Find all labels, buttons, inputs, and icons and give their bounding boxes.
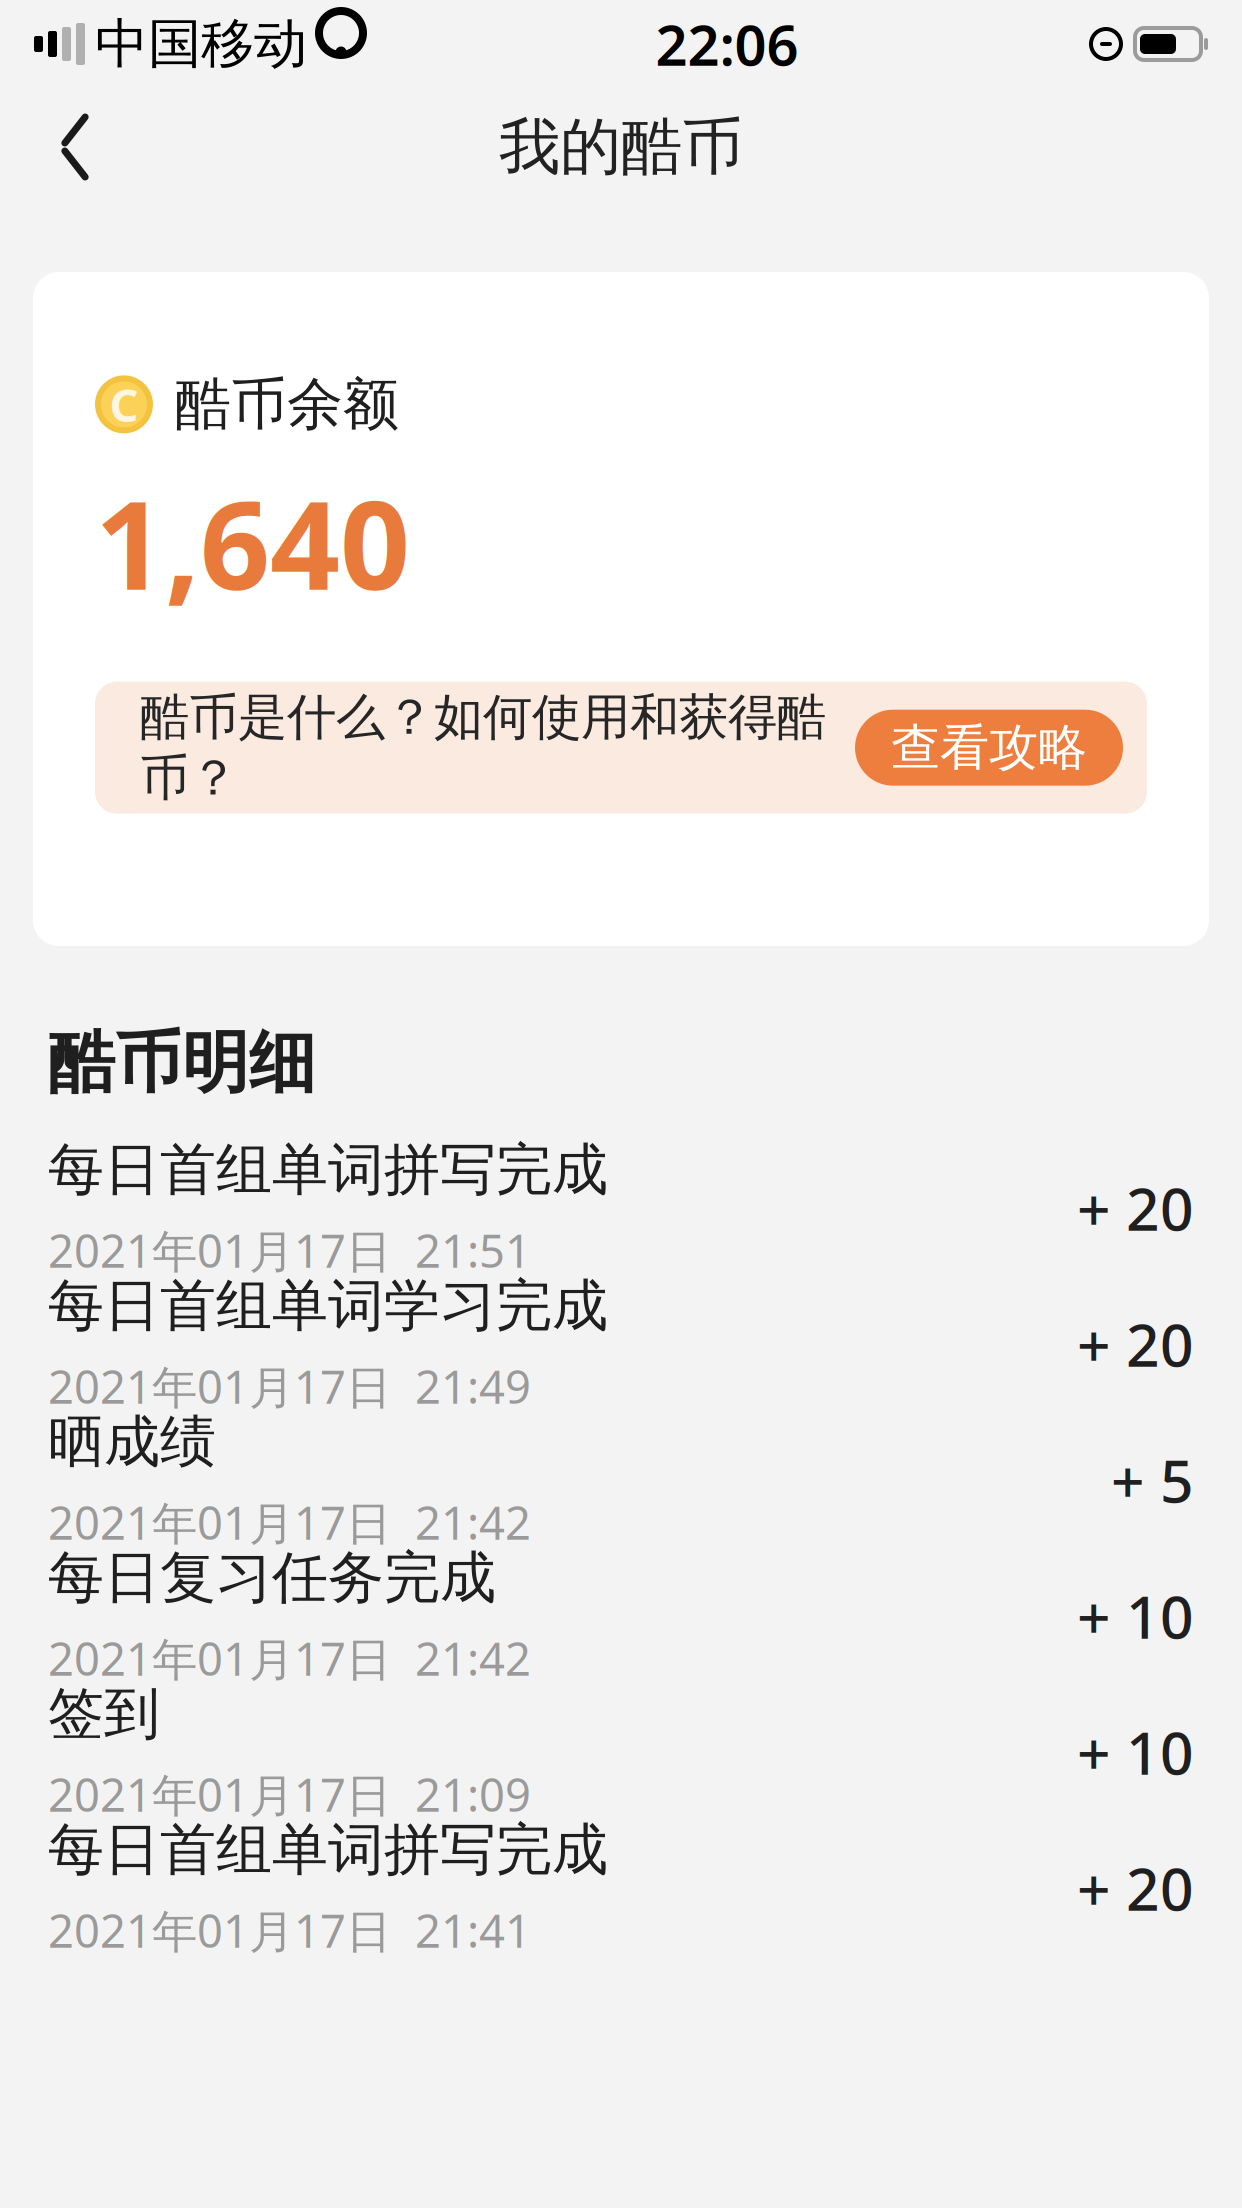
staticText: 我的酷币 [499, 109, 743, 185]
button[interactable]: 每日首组单词拼写完成 [0, 1140, 1242, 1276]
staticText: + 20 [1077, 1169, 1194, 1247]
staticText: 每日首组单词学习完成 [48, 1271, 608, 1340]
button[interactable]: 每日首组单词拼写完成 [0, 1820, 1242, 1956]
staticText: 2021年01月17日 21:49 [48, 1356, 531, 1416]
staticText: 签到 [48, 1679, 160, 1748]
staticText: 查看攻略 [891, 717, 1087, 778]
button[interactable]: 返回 [20, 92, 130, 202]
button[interactable]: 查看攻略 [855, 710, 1123, 786]
staticText: 每日首组单词拼写完成 [48, 1135, 608, 1204]
staticText: 1,640 [95, 461, 410, 624]
button[interactable]: 签到 [0, 1684, 1242, 1820]
staticText: 酷币明细 [48, 1022, 316, 1104]
staticText: 2021年01月17日 21:42 [48, 1628, 531, 1688]
staticText: 2021年01月17日 21:09 [48, 1764, 531, 1824]
staticText: + 5 [1111, 1441, 1194, 1519]
staticText: + 20 [1077, 1305, 1194, 1383]
button[interactable]: 每日复习任务完成 [0, 1548, 1242, 1684]
staticText: 2021年01月17日 21:42 [48, 1492, 531, 1552]
staticText: 每日复习任务完成 [48, 1543, 496, 1612]
staticText: 2021年01月17日 21:51 [48, 1220, 531, 1280]
staticText: 酷币是什么？如何使用和获得酷币？ [140, 687, 826, 808]
staticText: 中国移动 [95, 11, 307, 77]
staticText: 晒成绩 [48, 1407, 216, 1476]
staticText: 2021年01月17日 21:41 [48, 1900, 531, 1960]
staticText: + 10 [1077, 1713, 1194, 1791]
staticText: 酷币余额 [175, 370, 399, 439]
staticText: 22:06 [655, 7, 798, 81]
staticText: C [109, 374, 138, 434]
staticText: 每日首组单词拼写完成 [48, 1815, 608, 1884]
staticText: + 20 [1077, 1849, 1194, 1927]
button[interactable]: 每日首组单词学习完成 [0, 1276, 1242, 1412]
button[interactable]: 晒成绩 [0, 1412, 1242, 1548]
staticText: + 10 [1077, 1577, 1194, 1655]
